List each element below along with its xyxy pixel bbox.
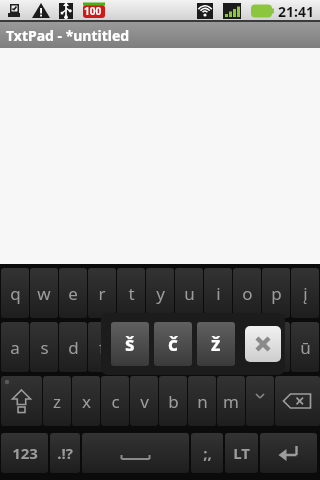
staticText: 123 <box>12 443 38 463</box>
button[interactable]: n <box>188 376 216 426</box>
staticText: č <box>168 331 178 357</box>
button[interactable]: q <box>1 268 29 318</box>
staticText: a <box>10 336 20 359</box>
button[interactable]: Shift <box>1 376 42 426</box>
button[interactable]: s <box>30 322 58 372</box>
button[interactable]: w <box>30 268 58 318</box>
staticText: l <box>245 336 250 359</box>
button[interactable]: ū <box>291 322 319 372</box>
button[interactable]: x <box>72 376 100 426</box>
button[interactable]: TxtPad - *untitled <box>0 22 320 48</box>
button[interactable]: g <box>117 322 145 372</box>
button[interactable]: ;, <box>191 433 223 473</box>
button[interactable]: a <box>1 322 29 372</box>
button[interactable]: Backspace <box>275 376 320 426</box>
staticText: e <box>68 282 78 305</box>
button[interactable]: j <box>175 322 203 372</box>
button[interactable]: p <box>262 268 290 318</box>
staticText: t <box>128 282 135 305</box>
button[interactable]: Space <box>82 433 189 473</box>
button[interactable]: u <box>175 268 203 318</box>
button[interactable]: ž <box>197 322 235 366</box>
staticText: w <box>37 282 51 305</box>
staticText: p <box>271 282 282 305</box>
staticText: d <box>68 336 79 359</box>
staticText: ū <box>300 336 311 359</box>
staticText: u <box>184 282 195 305</box>
button[interactable]: b <box>159 376 187 426</box>
staticText: į <box>303 282 308 305</box>
staticText: 21:41 <box>278 2 314 21</box>
staticText: LT <box>233 443 250 463</box>
staticText: ž <box>211 331 221 357</box>
staticText: b <box>168 390 179 413</box>
button[interactable]: o <box>233 268 261 318</box>
staticText: c <box>111 390 120 413</box>
staticText: z <box>53 390 61 413</box>
button[interactable]: Enter <box>260 433 317 473</box>
button[interactable]: y <box>146 268 174 318</box>
staticText: y <box>156 282 165 305</box>
button[interactable]: v <box>130 376 158 426</box>
staticText: ;, <box>203 443 212 463</box>
button[interactable]: t <box>117 268 145 318</box>
staticText: i <box>216 282 221 305</box>
button[interactable]: m <box>217 376 245 426</box>
button[interactable]: More <box>246 376 274 426</box>
button[interactable]: e <box>59 268 87 318</box>
button[interactable]: h <box>146 322 174 372</box>
button[interactable]: k <box>204 322 232 372</box>
staticText: TxtPad - *untitled <box>6 26 130 45</box>
staticText: o <box>242 282 253 305</box>
staticText: n <box>197 390 208 413</box>
staticText: 100 <box>84 4 102 18</box>
button[interactable]: l <box>233 322 261 372</box>
staticText: q <box>10 282 21 305</box>
staticText: f <box>99 336 105 359</box>
button[interactable]: .!? <box>50 433 80 473</box>
button[interactable]: č <box>154 322 192 366</box>
staticText: j <box>187 336 192 359</box>
staticText: k <box>213 336 223 359</box>
button[interactable]: š <box>111 322 149 366</box>
button[interactable]: LT <box>225 433 258 473</box>
staticText: ų <box>271 336 282 359</box>
button[interactable]: f <box>88 322 116 372</box>
staticText: r <box>98 282 106 305</box>
button[interactable]: r <box>88 268 116 318</box>
button[interactable]: Close <box>245 326 281 362</box>
staticText: .!? <box>57 443 73 463</box>
button[interactable]: ų <box>262 322 290 372</box>
button[interactable]: c <box>101 376 129 426</box>
button[interactable]: d <box>59 322 87 372</box>
staticText: s <box>40 336 49 359</box>
staticText: v <box>140 390 149 413</box>
button[interactable]: 123 <box>1 433 48 473</box>
button[interactable]: z <box>43 376 71 426</box>
button[interactable]: i <box>204 268 232 318</box>
staticText: m <box>223 390 239 413</box>
staticText: x <box>82 390 91 413</box>
staticText: š <box>125 331 135 357</box>
button[interactable]: į <box>291 268 319 318</box>
staticText: g <box>126 336 137 359</box>
staticText: h <box>155 336 166 359</box>
